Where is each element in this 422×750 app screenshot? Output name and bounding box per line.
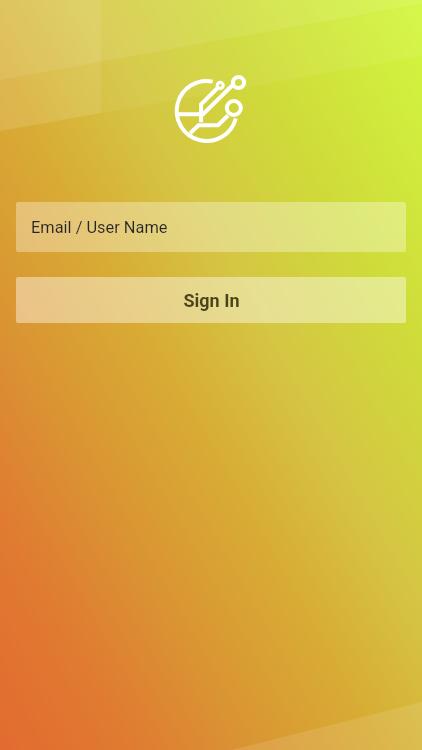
other: App logo	[173, 72, 249, 148]
staticText: Sign In	[183, 290, 240, 311]
button[interactable]: Sign In	[16, 277, 406, 323]
button[interactable]: Email / User Name	[16, 202, 406, 252]
staticText: Email / User Name	[31, 218, 168, 237]
